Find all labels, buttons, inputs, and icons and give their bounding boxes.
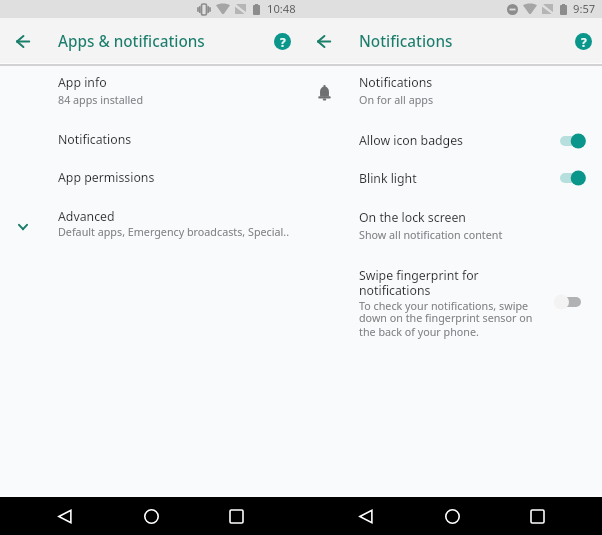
button[interactable] — [0, 202, 301, 247]
button[interactable]: Home — [435, 499, 469, 533]
button[interactable]: Back — [349, 499, 383, 533]
staticText: ? — [280, 34, 286, 50]
staticText: Show all notification content — [359, 228, 503, 243]
staticText: Default apps, Emergency broadcasts, Spec… — [58, 225, 290, 240]
button[interactable]: Navigate up — [307, 25, 340, 58]
staticText: On for all apps — [359, 93, 434, 108]
button[interactable] — [301, 258, 602, 344]
staticText: 10:48 — [267, 1, 296, 16]
button[interactable] — [0, 124, 301, 162]
staticText: App permissions — [58, 169, 155, 186]
staticText: Blink light — [359, 170, 417, 187]
button[interactable] — [301, 126, 602, 164]
staticText: Allow icon badges — [359, 132, 463, 149]
button[interactable] — [0, 163, 301, 201]
button[interactable]: Home — [134, 499, 168, 533]
staticText: down on the fingerprint sensor on — [359, 311, 533, 326]
button[interactable] — [301, 203, 602, 247]
button[interactable] — [0, 68, 301, 110]
staticText: App info — [58, 74, 107, 91]
staticText: Notifications — [359, 31, 453, 52]
button[interactable]: Back — [48, 499, 82, 533]
staticText: Swipe fingerprint for — [359, 267, 479, 284]
staticText: Notifications — [58, 131, 132, 148]
staticText: Advanced — [58, 208, 115, 225]
button[interactable]: Help — [567, 25, 599, 57]
staticText: On the lock screen — [359, 209, 466, 226]
button[interactable]: Help — [266, 25, 298, 57]
button[interactable] — [301, 68, 602, 110]
staticText: Notifications — [359, 74, 433, 91]
button[interactable]: Navigate up — [6, 25, 39, 58]
staticText: ? — [581, 34, 587, 50]
staticText: notifications — [359, 282, 431, 299]
staticText: the back of your phone. — [359, 325, 479, 340]
staticText: Apps & notifications — [58, 31, 205, 52]
button[interactable]: On — [550, 166, 590, 190]
button[interactable]: On — [550, 129, 590, 153]
staticText: 9:57 — [573, 1, 596, 16]
staticText: To check your notifications, swipe — [359, 299, 529, 314]
button[interactable]: Recent apps — [520, 499, 554, 533]
button[interactable]: Recent apps — [219, 499, 253, 533]
button[interactable]: Off — [550, 290, 590, 314]
button[interactable] — [301, 164, 602, 202]
staticText: 84 apps installed — [58, 93, 143, 108]
